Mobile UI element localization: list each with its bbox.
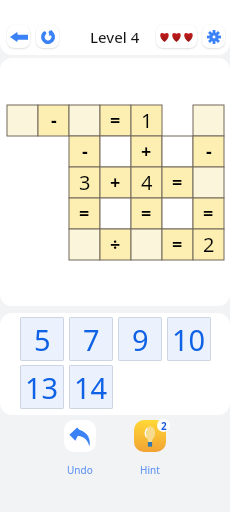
button[interactable]: - [38,105,69,136]
button[interactable] [162,136,193,167]
button[interactable]: Settings [202,25,225,48]
staticText: - [82,139,88,164]
staticText: = [79,201,90,226]
button[interactable]: = [162,229,193,260]
staticText: 10 [172,320,206,359]
button[interactable] [193,105,224,136]
button[interactable] [131,229,162,260]
staticText: - [51,108,57,133]
button[interactable]: 10 [167,317,211,361]
staticText: + [141,139,152,164]
button[interactable]: = [69,198,100,229]
staticText: Level 4 [90,27,140,47]
button[interactable]: = [131,198,162,229]
button[interactable]: + [131,136,162,167]
staticText: 1 [141,107,153,134]
button[interactable]: Lives [156,25,197,48]
staticText: = [141,201,152,226]
button[interactable]: 5 [20,317,64,361]
button[interactable]: 7 [69,317,113,361]
staticText: Hint [140,463,160,477]
button[interactable] [193,167,224,198]
staticText: = [203,201,214,226]
button[interactable]: 1 [131,105,162,136]
button[interactable] [100,136,131,167]
button[interactable]: = [100,105,131,136]
staticText: ÷ [110,232,121,257]
staticText: = [172,232,183,257]
button[interactable]: - [193,136,224,167]
staticText: Undo [67,463,93,477]
button[interactable]: Undo [46,415,114,477]
button[interactable]: Restart [36,25,59,48]
button[interactable] [69,105,100,136]
staticText: 13 [25,368,59,407]
button[interactable]: 2 [193,229,224,260]
staticText: 9 [132,320,149,359]
staticText: - [206,139,212,164]
button[interactable]: Back [7,25,30,48]
staticText: 7 [83,320,100,359]
staticText: 4 [141,169,153,196]
button[interactable]: 4 [131,167,162,198]
button[interactable]: 14 [69,365,113,409]
staticText: = [110,108,121,133]
button[interactable] [7,105,38,136]
button[interactable]: 2 [116,415,184,477]
button[interactable]: 13 [20,365,64,409]
staticText: 14 [74,368,108,407]
button[interactable]: 9 [118,317,162,361]
staticText: 2 [203,231,215,258]
button[interactable] [162,198,193,229]
staticText: = [172,170,183,195]
staticText: 2 [161,419,167,432]
button[interactable] [100,198,131,229]
staticText: 3 [79,169,91,196]
staticText: 5 [34,320,51,359]
button[interactable]: ÷ [100,229,131,260]
button[interactable]: + [100,167,131,198]
button[interactable]: = [162,167,193,198]
button[interactable]: = [193,198,224,229]
button[interactable]: 3 [69,167,100,198]
staticText: + [110,170,121,195]
button[interactable]: - [69,136,100,167]
button[interactable] [69,229,100,260]
